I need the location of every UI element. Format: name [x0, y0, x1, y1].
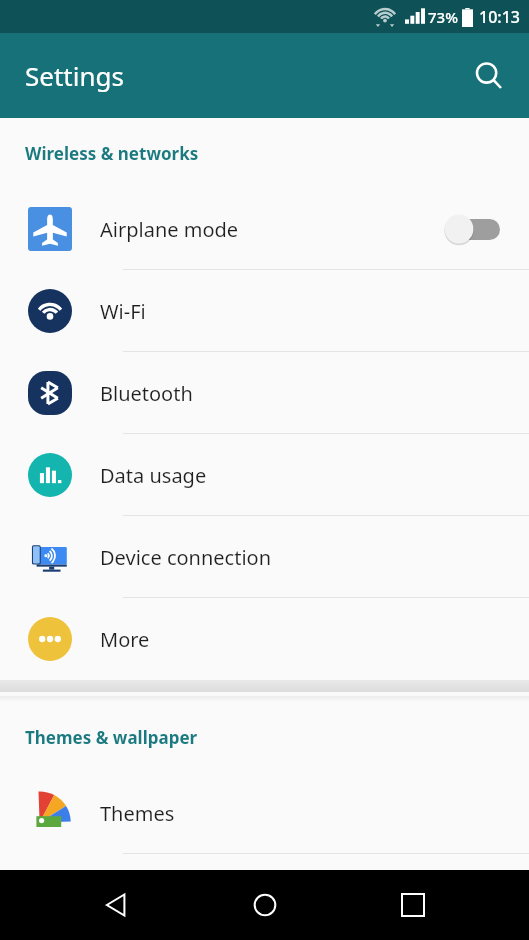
staticText: Wireless & networks [25, 142, 199, 165]
staticText: Themes [100, 800, 529, 827]
button[interactable]: Data usage [0, 434, 529, 516]
staticText: Data usage [100, 462, 529, 489]
button[interactable]: More [0, 598, 529, 680]
button[interactable]: Device connection [0, 516, 529, 598]
button[interactable]: Airplane mode [0, 188, 529, 270]
staticText: More [100, 626, 529, 653]
button[interactable]: Bluetooth [0, 352, 529, 434]
staticText: Bluetooth [100, 380, 529, 407]
button[interactable]: Themes [0, 772, 529, 854]
staticText: Settings [25, 58, 124, 93]
staticText: Themes & wallpaper [25, 726, 198, 749]
staticText: Airplane mode [100, 216, 443, 243]
staticText: 73% [428, 7, 458, 27]
button[interactable]: Search [461, 48, 517, 104]
staticText: Wi-Fi [100, 298, 529, 325]
button[interactable]: Wi-Fi [0, 270, 529, 352]
staticText: Device connection [100, 544, 529, 571]
button[interactable]: Recent apps [381, 873, 445, 937]
button[interactable]: Home [233, 873, 297, 937]
button[interactable]: Back [84, 873, 148, 937]
button[interactable] [443, 212, 501, 246]
staticText: 10:13 [479, 6, 520, 28]
